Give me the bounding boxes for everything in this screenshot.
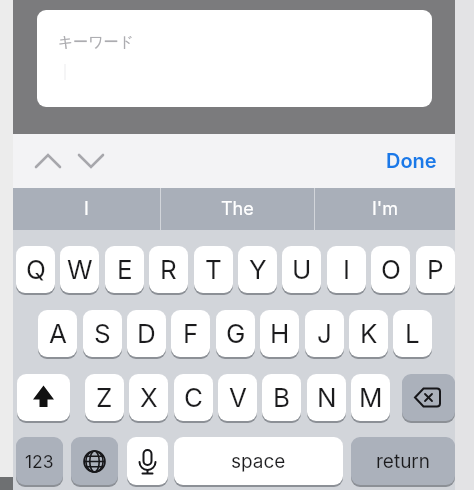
- staticText: I'm: [372, 198, 398, 220]
- staticText: K: [360, 318, 378, 349]
- staticText: A: [49, 318, 67, 349]
- staticText: B: [273, 382, 291, 413]
- staticText: The: [221, 198, 254, 220]
- staticText: G: [226, 318, 246, 349]
- staticText: L: [405, 318, 420, 349]
- staticText: space: [231, 450, 286, 473]
- staticText: Z: [96, 382, 113, 413]
- staticText: X: [140, 382, 158, 413]
- staticText: D: [137, 318, 156, 349]
- staticText: キーワード: [58, 33, 135, 52]
- staticText: O: [381, 254, 401, 285]
- staticText: E: [117, 254, 133, 285]
- staticText: T: [205, 254, 222, 285]
- staticText: I: [84, 198, 89, 220]
- staticText: R: [160, 254, 177, 285]
- staticText: Q: [26, 254, 46, 285]
- staticText: N: [317, 382, 337, 413]
- staticText: I: [343, 254, 350, 285]
- staticText: 123: [25, 451, 54, 472]
- staticText: P: [427, 254, 444, 285]
- staticText: U: [292, 254, 312, 285]
- staticText: H: [270, 318, 290, 349]
- staticText: W: [67, 254, 93, 285]
- staticText: C: [184, 382, 203, 413]
- staticText: Done: [386, 149, 437, 173]
- staticText: F: [183, 318, 199, 349]
- staticText: M: [359, 382, 383, 413]
- staticText: return: [376, 450, 431, 473]
- staticText: V: [229, 382, 247, 413]
- staticText: S: [94, 318, 111, 349]
- staticText: Y: [249, 254, 267, 285]
- staticText: J: [317, 318, 332, 349]
